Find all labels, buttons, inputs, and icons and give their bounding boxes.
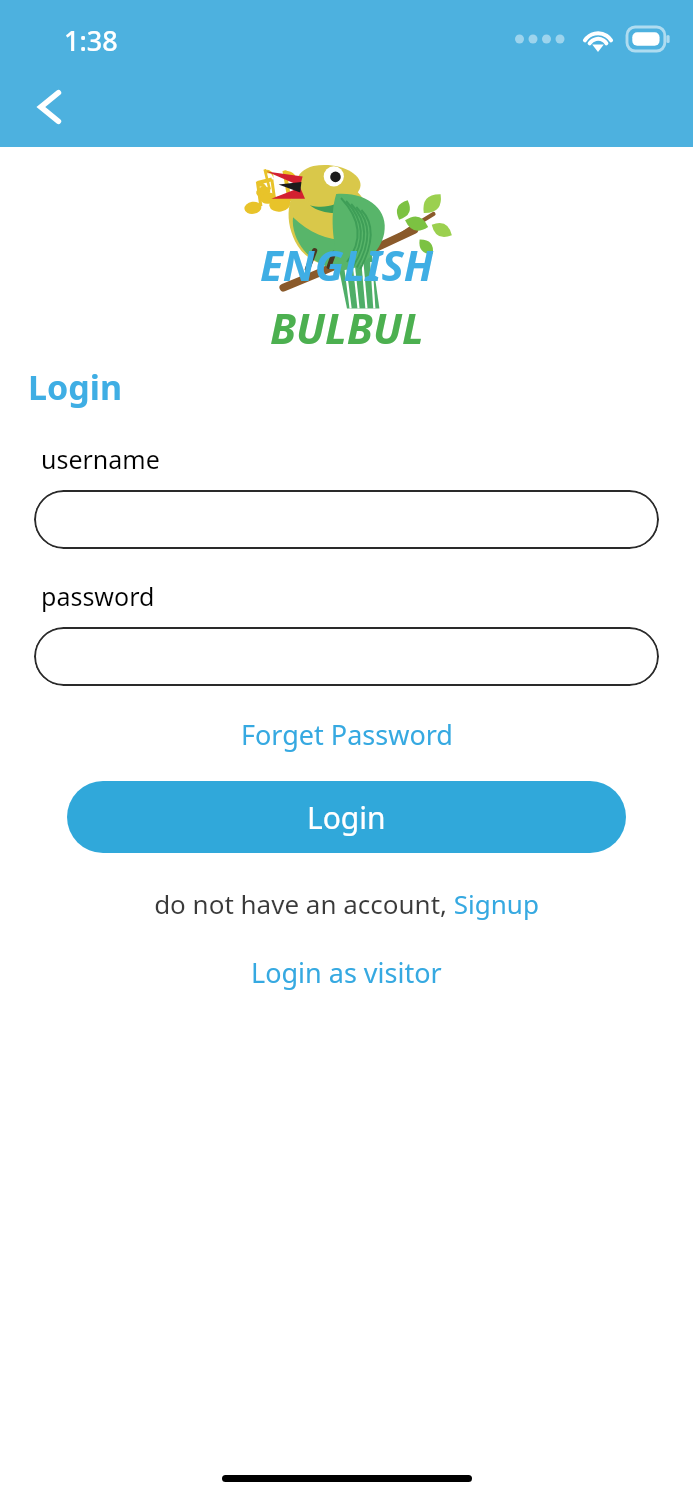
staticText: 1:38 xyxy=(64,22,118,59)
button[interactable]: Forget Password xyxy=(227,710,467,759)
button[interactable]: Login xyxy=(67,781,626,853)
staticText: Login xyxy=(307,797,386,838)
button[interactable] xyxy=(34,490,659,549)
staticText: ENGLISH xyxy=(260,236,434,293)
staticText: username xyxy=(41,442,160,476)
staticText: password xyxy=(41,579,155,613)
staticText: Forget Password xyxy=(241,716,453,753)
button[interactable]: do not have an account, Signup xyxy=(144,881,549,926)
staticText: do not have an account, Signup xyxy=(154,886,539,921)
staticText: BULBUL xyxy=(270,299,424,356)
button[interactable]: Login as visitor xyxy=(237,948,456,997)
button[interactable]: Back xyxy=(22,78,80,136)
staticText: Login xyxy=(28,364,123,410)
staticText: Login as visitor xyxy=(251,954,442,991)
button[interactable] xyxy=(34,627,659,686)
